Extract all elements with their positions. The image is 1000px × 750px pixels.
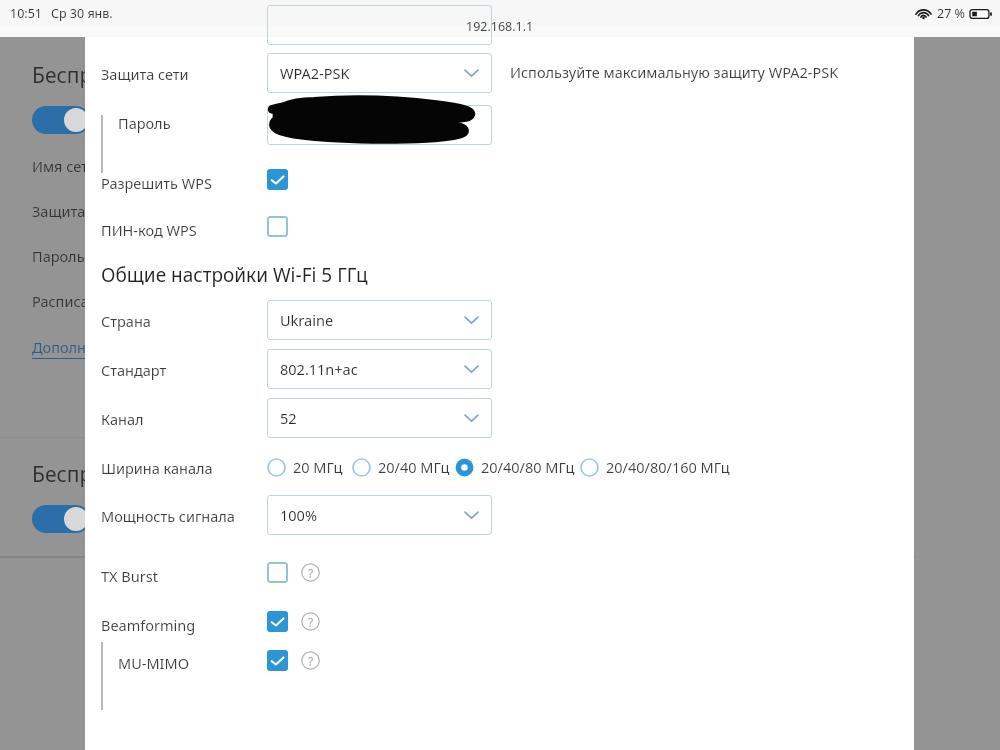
button[interactable]: 20/40 МГц	[352, 455, 450, 479]
staticText: Пароль	[118, 113, 171, 133]
staticText: Имя сети	[32, 156, 97, 176]
staticText: Защита сети	[101, 64, 189, 84]
staticText: 10:51	[10, 5, 42, 22]
staticText: 52	[280, 408, 297, 428]
staticText: Разрешить WPS	[101, 173, 212, 193]
button[interactable]: Ukraine	[267, 300, 492, 340]
button[interactable]: TX Burst checkbox	[267, 562, 288, 583]
staticText: Beamforming	[101, 615, 196, 635]
button[interactable]: ПИН-код WPS checkbox	[267, 216, 288, 237]
staticText: Пароль	[32, 246, 85, 266]
button[interactable]: Help MU-MIMO	[300, 650, 321, 671]
button[interactable]: Toggle	[32, 106, 90, 134]
button[interactable]: 20/40/80 МГц	[455, 455, 575, 479]
staticText: 20/40 МГц	[378, 457, 450, 477]
button[interactable]: Toggle	[32, 505, 90, 533]
staticText: Общие настройки Wi-Fi 5 ГГц	[101, 262, 368, 288]
staticText: 27 %	[937, 5, 965, 22]
button[interactable]: Help Beamforming	[300, 611, 321, 632]
staticText: ?	[308, 614, 314, 630]
button[interactable]: 52	[267, 398, 492, 438]
staticText: MU-MIMO	[118, 653, 189, 673]
button[interactable]: MU-MIMO checkbox	[267, 650, 288, 671]
staticText: WPA2-PSK	[280, 63, 350, 83]
staticText: TX Burst	[101, 566, 158, 586]
staticText: Защита с	[32, 201, 97, 221]
staticText: Беспро	[32, 460, 105, 489]
staticText: ?	[308, 565, 314, 581]
staticText: 802.11n+ac	[280, 359, 358, 379]
staticText: Канал	[101, 409, 144, 429]
button[interactable]: Help TX Burst	[300, 562, 321, 583]
staticText: Ukraine	[280, 310, 334, 330]
staticText: Мощность сигнала	[101, 506, 235, 526]
button[interactable]: 20/40/80/160 МГц	[580, 455, 730, 479]
staticText: Используйте максимальную защиту WPA2-PSK	[510, 62, 839, 82]
staticText: 20 МГц	[293, 457, 343, 477]
staticText: Беспро	[32, 61, 105, 90]
staticText: Расписа	[32, 291, 89, 311]
staticText: Дополни	[32, 337, 96, 357]
staticText: 100%	[280, 505, 317, 525]
staticText: 192.168.1.1	[466, 18, 534, 35]
button[interactable]: Разрешить WPS checkbox	[267, 169, 288, 190]
staticText: Ширина канала	[101, 458, 213, 478]
staticText: ?	[308, 653, 314, 669]
staticText: 20/40/80/160 МГц	[606, 457, 730, 477]
button[interactable]: WPA2-PSK	[267, 53, 492, 93]
button[interactable]: 20 МГц	[267, 455, 343, 479]
button[interactable]: Beamforming checkbox	[267, 611, 288, 632]
staticText: 20/40/80 МГц	[481, 457, 575, 477]
staticText: Стандарт	[101, 360, 167, 380]
staticText: ПИН-код WPS	[101, 220, 197, 240]
button[interactable]: 802.11n+ac	[267, 349, 492, 389]
staticText: Страна	[101, 311, 151, 331]
button[interactable]: 100%	[267, 495, 492, 535]
staticText: Ср 30 янв.	[51, 5, 113, 22]
